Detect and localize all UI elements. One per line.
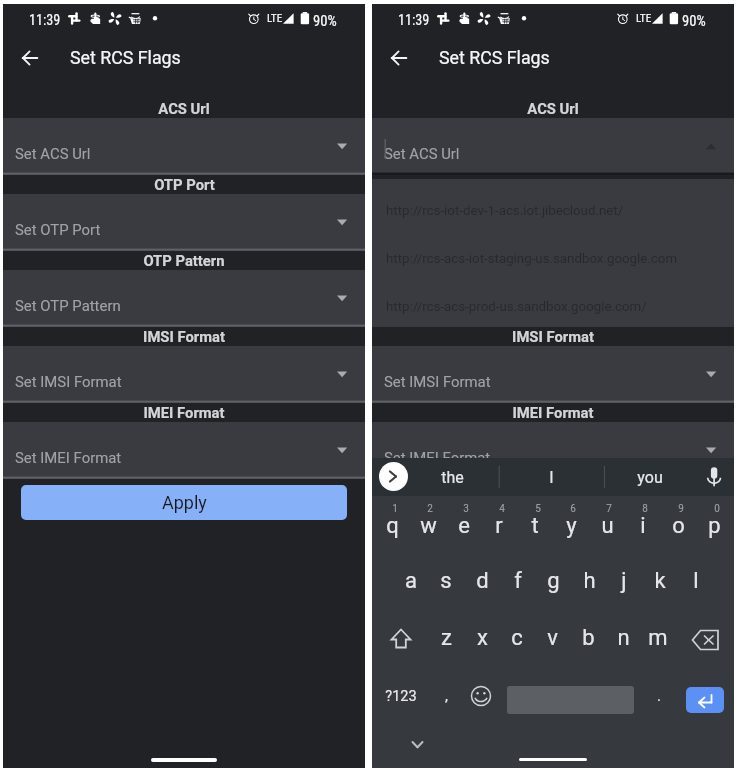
staticText: LTE — [267, 12, 283, 25]
staticText: 90% — [682, 12, 706, 29]
staticText: I — [549, 468, 554, 487]
staticText: 11:39 — [398, 12, 430, 29]
staticText: s — [440, 568, 452, 594]
staticText: l — [693, 568, 699, 594]
staticText: Apply — [162, 492, 207, 513]
staticText: h — [583, 568, 596, 594]
staticText: n — [617, 625, 630, 651]
staticText: Set IMSI Format — [15, 373, 122, 390]
staticText: . — [657, 687, 661, 705]
button[interactable]: Navigate up — [383, 42, 415, 74]
staticText: r — [495, 513, 503, 539]
staticText: u — [601, 513, 614, 539]
staticText: 0 — [714, 503, 720, 515]
staticText: Set IMEI Format — [15, 449, 122, 466]
staticText: Set OTP Pattern — [15, 297, 121, 314]
staticText: IMSI Format — [143, 328, 225, 345]
staticText: Set OTP Port — [15, 221, 101, 238]
staticText: LTE — [636, 12, 652, 25]
staticText: , — [445, 687, 448, 705]
button[interactable] — [3, 118, 365, 173]
staticText: 6 — [570, 503, 576, 515]
staticText: you — [637, 468, 663, 487]
staticText: x — [477, 625, 488, 651]
staticText: y — [566, 513, 577, 539]
staticText: Set ACS Url — [15, 145, 91, 162]
staticText: IMEI Format — [512, 404, 594, 421]
staticText: d — [476, 568, 489, 594]
staticText: IMSI Format — [512, 328, 594, 345]
staticText: m — [648, 625, 668, 651]
staticText: OTP Port — [154, 176, 215, 193]
staticText: w — [420, 513, 437, 539]
staticText: the — [441, 468, 464, 487]
staticText: c — [511, 625, 523, 651]
button[interactable]: Backspace — [690, 625, 722, 657]
button[interactable]: More suggestions — [379, 462, 408, 491]
staticText: b — [582, 625, 595, 651]
button[interactable]: Apply — [21, 485, 347, 520]
button[interactable] — [3, 422, 365, 477]
staticText: Set IMEI Format — [384, 449, 491, 466]
button[interactable] — [372, 422, 734, 477]
button[interactable] — [372, 346, 734, 401]
staticText: Set RCS Flags — [439, 47, 550, 68]
staticText: p — [708, 513, 721, 539]
button[interactable] — [372, 118, 734, 173]
button[interactable]: Hide keyboard — [406, 734, 430, 758]
staticText: j — [621, 568, 627, 594]
staticText: i — [640, 513, 646, 539]
staticText: f — [514, 568, 522, 594]
staticText: OTP Pattern — [143, 252, 225, 269]
staticText: 3 — [463, 503, 469, 515]
button[interactable] — [3, 270, 365, 325]
staticText: 90% — [313, 12, 337, 29]
staticText: http://rcs-iot-dev-1-acs.iot.jibecloud.n… — [386, 203, 624, 219]
button[interactable] — [3, 194, 365, 249]
staticText: 5 — [535, 503, 541, 515]
staticText: ?123 — [385, 688, 417, 705]
staticText: Set IMSI Format — [384, 373, 491, 390]
staticText: t — [531, 513, 539, 539]
staticText: ACS Url — [527, 100, 579, 117]
button[interactable]: Enter — [686, 687, 724, 713]
staticText: 11:39 — [29, 12, 61, 29]
staticText: 4 — [499, 503, 505, 515]
staticText: Set ACS Url — [384, 145, 460, 162]
staticText: e — [458, 513, 470, 539]
staticText: ACS Url — [158, 100, 210, 117]
staticText: IMEI Format — [143, 404, 225, 421]
staticText: v — [547, 625, 558, 651]
staticText: 1 — [392, 503, 398, 515]
staticText: 8 — [642, 503, 648, 515]
staticText: 2 — [427, 503, 433, 515]
button[interactable]: Emoji — [470, 685, 492, 707]
staticText: Set RCS Flags — [70, 47, 181, 68]
button[interactable]: http://rcs-acs-prod-us.sandbox.google.co… — [372, 283, 734, 331]
staticText: a — [405, 568, 417, 594]
staticText: 9 — [678, 503, 684, 515]
button[interactable]: Shift — [386, 625, 416, 655]
staticText: 7 — [606, 503, 612, 515]
staticText: http://rcs-acs-prod-us.sandbox.google.co… — [386, 299, 647, 315]
staticText: q — [386, 513, 399, 539]
button[interactable]: http://rcs-acs-iot-staging-us.sandbox.go… — [372, 235, 734, 283]
staticText: g — [547, 568, 560, 594]
staticText: http://rcs-acs-iot-staging-us.sandbox.go… — [386, 251, 678, 267]
staticText: k — [654, 568, 666, 594]
button[interactable]: Navigate up — [14, 42, 46, 74]
button[interactable] — [3, 346, 365, 401]
staticText: o — [672, 513, 685, 539]
staticText: z — [441, 625, 452, 651]
